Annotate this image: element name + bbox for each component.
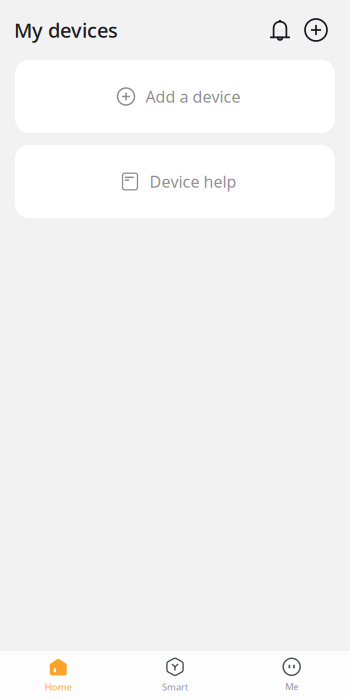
staticText: My devices (14, 17, 118, 43)
button[interactable]: Device help (15, 145, 335, 218)
staticText: Device help (149, 171, 236, 192)
staticText: Smart (162, 681, 188, 693)
button[interactable]: Notifications (262, 10, 298, 50)
staticText: Me (285, 680, 298, 693)
staticText: Add a device (145, 86, 240, 107)
button[interactable]: Home (0, 651, 117, 698)
button[interactable]: Add device (298, 10, 334, 50)
button[interactable]: Add a device (15, 60, 335, 133)
button[interactable]: Me (233, 651, 350, 698)
staticText: Home (45, 681, 72, 693)
button[interactable]: Smart (117, 651, 233, 698)
